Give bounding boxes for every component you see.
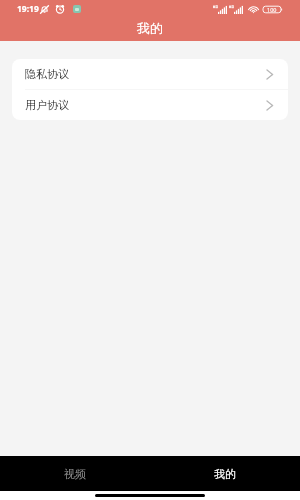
button[interactable]: 隐私协议 — [12, 59, 288, 89]
button[interactable]: 我的 — [150, 456, 300, 491]
staticText: 用户协议 — [25, 98, 69, 112]
staticText: 我的 — [137, 20, 163, 36]
staticText: 视频 — [64, 467, 86, 481]
other: Open 隐私协议 — [265, 68, 274, 81]
other: Open 用户协议 — [265, 99, 274, 112]
staticText: 隐私协议 — [25, 67, 69, 81]
button[interactable]: 用户协议 — [12, 90, 288, 120]
staticText: 100 — [267, 6, 277, 13]
button[interactable]: 视频 — [0, 456, 150, 491]
staticText: 我的 — [214, 467, 236, 481]
staticText: 19:19 — [17, 3, 39, 15]
